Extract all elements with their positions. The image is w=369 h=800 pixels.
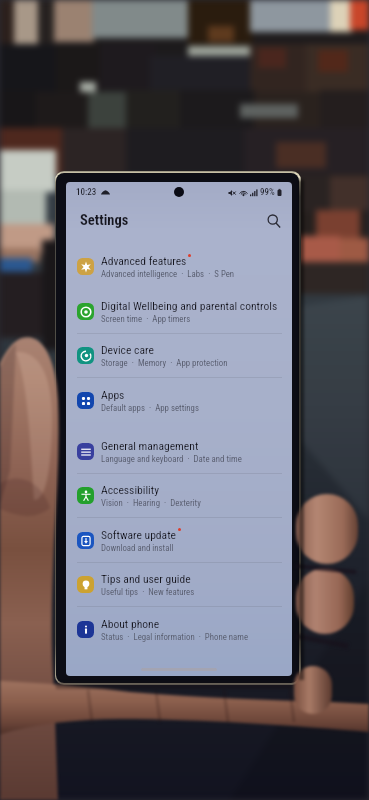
button[interactable]: About phone (66, 608, 292, 650)
staticText: Storage · Memory · App protection (101, 358, 228, 368)
button[interactable]: Apps (66, 379, 292, 421)
button[interactable]: Software update (66, 519, 292, 561)
button[interactable]: Device care (66, 334, 292, 376)
staticText: Default apps · App settings (101, 403, 199, 413)
staticText: Advanced intelligence · Labs · S Pen (101, 269, 235, 279)
staticText: Digital Wellbeing and parental controls (101, 299, 278, 313)
staticText: Screen time · App timers (101, 314, 191, 324)
button[interactable]: General management (66, 430, 292, 472)
button[interactable]: Search (264, 211, 284, 231)
staticText: General management (101, 439, 199, 453)
staticText: Accessibility (101, 483, 160, 497)
staticText: 99% (260, 187, 275, 198)
button[interactable]: Accessibility (66, 474, 292, 516)
staticText: Settings (80, 212, 129, 229)
staticText: Software update (101, 528, 177, 542)
staticText: Language and keyboard · Date and time (101, 454, 242, 464)
staticText: Advanced features (101, 254, 187, 268)
staticText: About phone (101, 617, 160, 631)
staticText: Device care (101, 343, 154, 357)
button[interactable]: Advanced features (66, 245, 292, 287)
staticText: Download and install (101, 543, 174, 553)
staticText: Tips and user guide (101, 572, 191, 586)
staticText: Status · Legal information · Phone name (101, 632, 249, 642)
staticText: 10:23 (76, 187, 97, 198)
staticText: Useful tips · New features (101, 587, 195, 597)
staticText: Apps (101, 388, 125, 402)
staticText: Vision · Hearing · Dexterity (101, 498, 201, 508)
button[interactable]: Digital Wellbeing and parental controls (66, 290, 292, 332)
button[interactable]: Tips and user guide (66, 563, 292, 605)
